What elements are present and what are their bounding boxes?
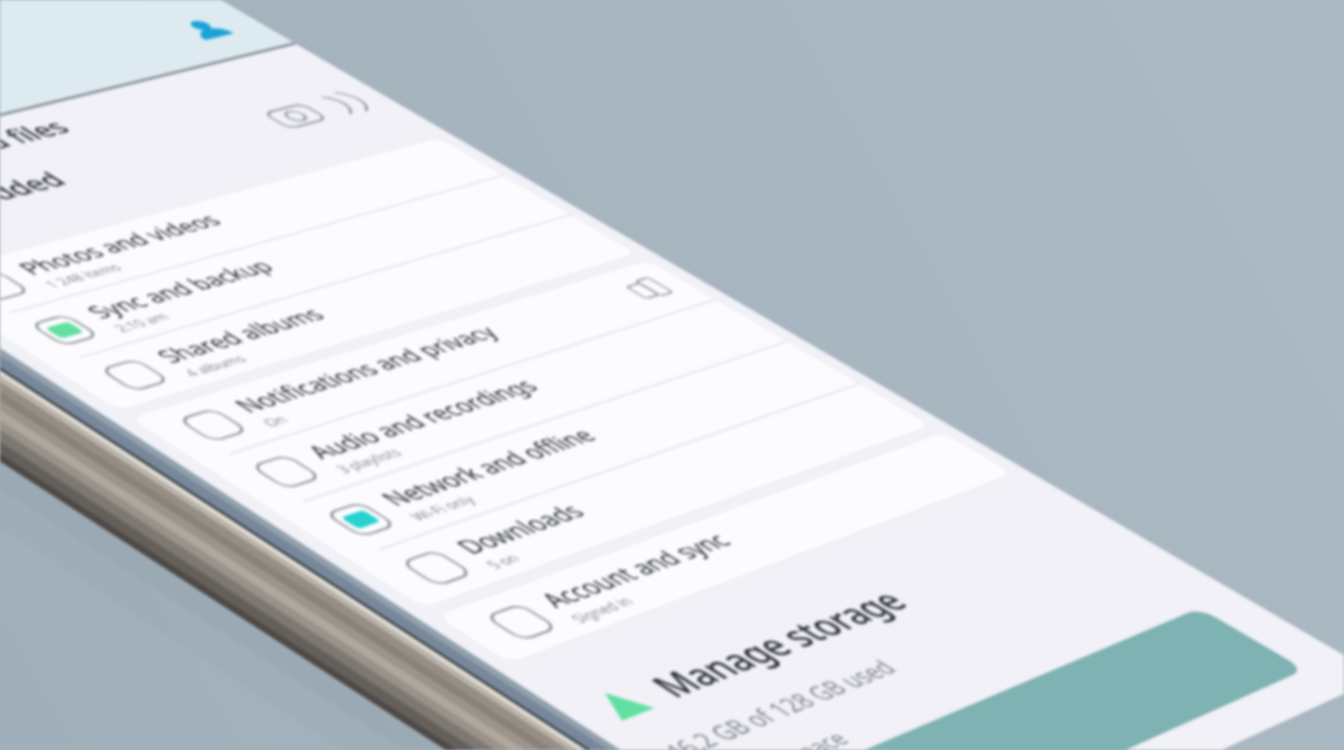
staticText: Wi-Fi only (61, 440, 98, 451)
staticText: 4 albums (61, 307, 96, 318)
staticText: Audio and recordings (61, 378, 202, 397)
button[interactable]: Photos and videos (8, 196, 352, 238)
staticText: 2:10 am (61, 264, 91, 275)
button[interactable]: Audio and recordings (8, 372, 352, 414)
button[interactable]: Profile (316, 53, 340, 77)
button[interactable]: Downloads (8, 458, 352, 500)
button[interactable]: Sync and backup (8, 239, 352, 281)
button[interactable]: Your media and files (0, 94, 360, 130)
staticText: 5 on (61, 483, 78, 494)
button[interactable]: Account and sync (8, 505, 352, 547)
button[interactable]: Manage storage (0, 569, 360, 611)
staticText: Shared albums (61, 288, 160, 307)
staticText: 3 playlists (61, 397, 98, 408)
button[interactable]: Network and offline (8, 415, 352, 457)
staticText: Manage storage (52, 577, 208, 604)
button[interactable]: Shared albums (8, 282, 352, 324)
button[interactable]: Notifications and privacy (8, 329, 352, 371)
button[interactable] (14, 663, 332, 719)
staticText: Your media and files (16, 101, 182, 124)
other: Devices (318, 340, 338, 360)
staticText: Recently added (16, 140, 141, 163)
staticText: Photos and videos (61, 202, 182, 221)
staticText: Network and offline (61, 421, 192, 440)
button[interactable]: Recently added (0, 130, 360, 172)
staticText: Account and sync (61, 511, 176, 530)
staticText: Notifications and privacy (61, 335, 224, 354)
staticText: Downloads (61, 464, 135, 483)
staticText: Sync and backup (61, 245, 172, 264)
